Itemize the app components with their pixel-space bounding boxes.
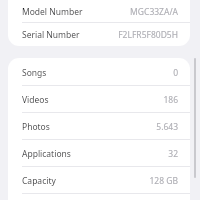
staticText: Photos bbox=[22, 121, 50, 133]
button[interactable]: Serial Number bbox=[8, 23, 190, 46]
staticText: Videos bbox=[22, 94, 49, 106]
button[interactable]: Capacity bbox=[8, 167, 190, 194]
staticText: F2LFR5F80D5H bbox=[118, 29, 178, 41]
staticText: 5.643 bbox=[156, 121, 178, 133]
staticText: Model Number bbox=[22, 6, 83, 18]
staticText: Capacity bbox=[22, 175, 56, 187]
button[interactable]: Photos bbox=[8, 113, 190, 140]
button[interactable]: Applications bbox=[8, 140, 190, 167]
staticText: Songs bbox=[22, 67, 47, 79]
staticText: 186 bbox=[163, 94, 178, 106]
button[interactable]: Model Number bbox=[8, 0, 190, 23]
staticText: 32 bbox=[168, 148, 178, 160]
staticText: MGC33ZA/A bbox=[130, 6, 178, 18]
staticText: Applications bbox=[22, 148, 71, 160]
button[interactable]: Videos bbox=[8, 86, 190, 113]
staticText: 128 GB bbox=[149, 175, 178, 187]
staticText: 0 bbox=[173, 67, 178, 79]
staticText: Serial Number bbox=[22, 29, 80, 41]
button[interactable]: Songs bbox=[8, 59, 190, 86]
